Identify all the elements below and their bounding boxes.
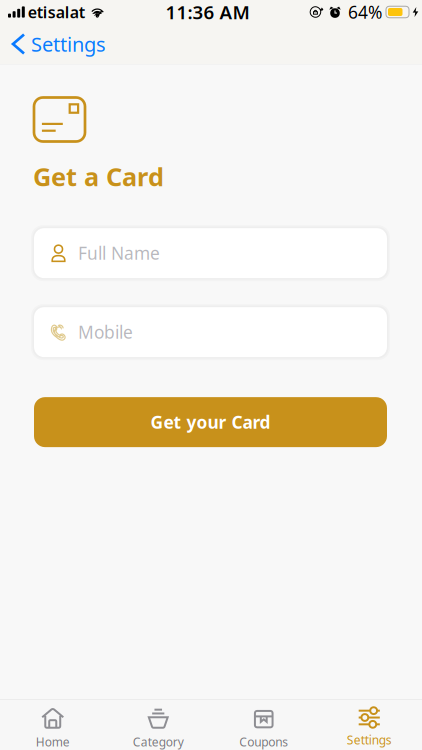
staticText: Settings bbox=[347, 732, 392, 748]
button[interactable]: Category bbox=[105, 700, 211, 750]
staticText: Category bbox=[133, 734, 184, 750]
staticText: Get a Card bbox=[33, 159, 164, 193]
button[interactable]: Mobile bbox=[34, 307, 387, 357]
staticText: Get your Card bbox=[150, 411, 270, 434]
button[interactable]: Full Name bbox=[34, 228, 387, 278]
staticText: 11:36 AM bbox=[165, 0, 249, 24]
staticText: Full Name bbox=[78, 242, 160, 265]
button[interactable]: Settings bbox=[0, 24, 116, 64]
staticText: 64% bbox=[348, 0, 382, 23]
button[interactable]: Get your Card bbox=[34, 397, 387, 447]
button[interactable]: Home bbox=[0, 700, 105, 750]
staticText: etisalat bbox=[28, 1, 85, 23]
button[interactable]: Coupons bbox=[211, 700, 316, 750]
staticText: Coupons bbox=[239, 734, 288, 750]
staticText: Home bbox=[36, 734, 70, 750]
staticText: Mobile bbox=[78, 321, 133, 344]
button[interactable]: Settings bbox=[316, 700, 422, 750]
staticText: Settings bbox=[31, 31, 106, 57]
